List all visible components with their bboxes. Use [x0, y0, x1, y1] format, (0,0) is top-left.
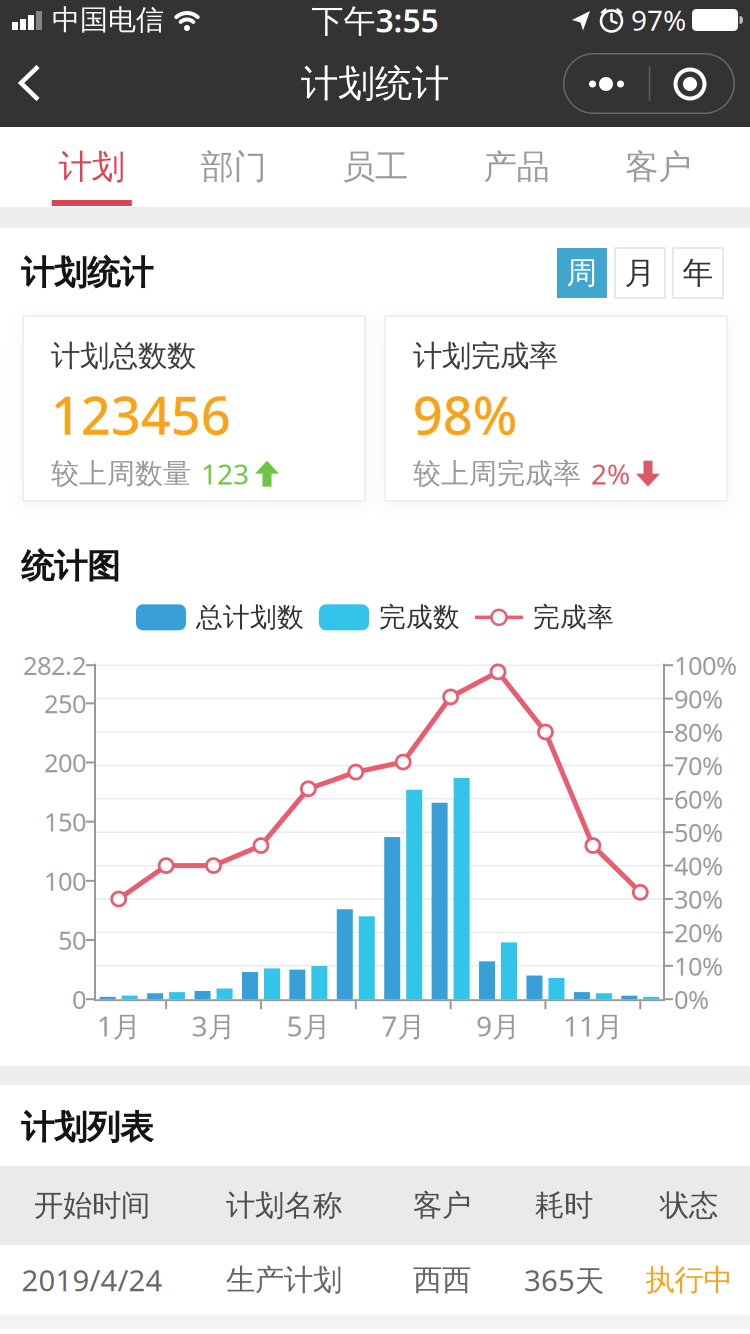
button[interactable]: 部门	[163, 127, 304, 207]
staticText: 100	[44, 864, 86, 898]
staticText: 97%	[631, 1, 686, 39]
staticText: 0%	[674, 982, 709, 1016]
button[interactable]	[0, 63, 46, 103]
button[interactable]: 月	[615, 248, 665, 298]
staticText: 月	[624, 254, 655, 292]
staticText: 中国电信	[52, 3, 164, 37]
staticText: 282.2	[23, 648, 86, 682]
staticText: 统计图	[21, 546, 120, 587]
button[interactable]: 员工	[304, 127, 446, 207]
staticText: 部门	[200, 146, 266, 187]
staticText: 10%	[674, 949, 723, 983]
staticText: 计划列表	[21, 1107, 153, 1148]
staticText: 计划完成率	[413, 338, 558, 374]
staticText: 较上周数量	[51, 456, 191, 491]
staticText: 耗时	[535, 1187, 593, 1223]
staticText: 50	[58, 923, 86, 957]
button[interactable]: 计划完成率	[385, 316, 727, 501]
button[interactable]: 客户	[587, 127, 729, 207]
staticText: 98%	[413, 380, 517, 449]
staticText: 80%	[674, 715, 723, 749]
staticText: 70%	[674, 749, 723, 782]
staticText: 2019/4/24	[21, 1260, 162, 1299]
staticText: 60%	[674, 782, 723, 816]
staticText: 123	[201, 455, 249, 492]
staticText: 123456	[51, 380, 231, 449]
button[interactable]: 2019/4/24	[0, 1245, 750, 1315]
staticText: 365天	[524, 1260, 604, 1299]
staticText: 5月	[286, 1007, 330, 1044]
staticText: 0	[72, 982, 86, 1016]
staticText: 20%	[674, 916, 723, 949]
staticText: 计划名称	[226, 1187, 342, 1223]
staticText: 计划统计	[301, 61, 449, 106]
staticText: 生产计划	[226, 1262, 342, 1298]
staticText: 周	[566, 254, 597, 292]
staticText: 40%	[674, 849, 723, 882]
staticText: 计划统计	[21, 252, 153, 293]
button[interactable]: 计划总数数	[23, 316, 365, 501]
staticText: 200	[44, 746, 86, 779]
staticText: 完成数	[379, 601, 460, 634]
staticText: 开始时间	[34, 1187, 150, 1223]
staticText: 客户	[413, 1187, 471, 1223]
staticText: 9月	[476, 1007, 520, 1044]
staticText: 2%	[591, 455, 630, 492]
button[interactable]: 周	[557, 248, 607, 298]
staticText: 50%	[674, 815, 723, 849]
button[interactable]	[563, 53, 649, 114]
staticText: 90%	[674, 682, 723, 715]
staticText: 产品	[484, 146, 550, 187]
staticText: 7月	[381, 1007, 425, 1044]
staticText: 计划	[59, 146, 125, 187]
staticText: 100%	[674, 648, 737, 682]
button[interactable]: 年	[673, 248, 723, 298]
staticText: 1月	[97, 1007, 141, 1044]
staticText: 3月	[191, 1007, 235, 1044]
staticText: 员工	[342, 146, 408, 187]
button[interactable]	[649, 53, 735, 114]
staticText: 总计划数	[196, 601, 304, 634]
staticText: 完成率	[533, 601, 614, 634]
staticText: 西西	[413, 1262, 471, 1298]
staticText: 执行中	[645, 1262, 732, 1298]
staticText: 下午3:55	[311, 0, 438, 41]
staticText: 较上周完成率	[413, 456, 581, 491]
staticText: 计划总数数	[51, 338, 196, 374]
staticText: 30%	[674, 882, 723, 916]
button[interactable]: 产品	[446, 127, 587, 207]
staticText: 客户	[625, 146, 691, 187]
staticText: 11月	[563, 1007, 623, 1044]
staticText: 状态	[660, 1187, 718, 1223]
button[interactable]: 计划	[21, 127, 163, 207]
staticText: 250	[44, 686, 86, 720]
staticText: 150	[44, 805, 86, 838]
staticText: 年	[682, 254, 713, 292]
